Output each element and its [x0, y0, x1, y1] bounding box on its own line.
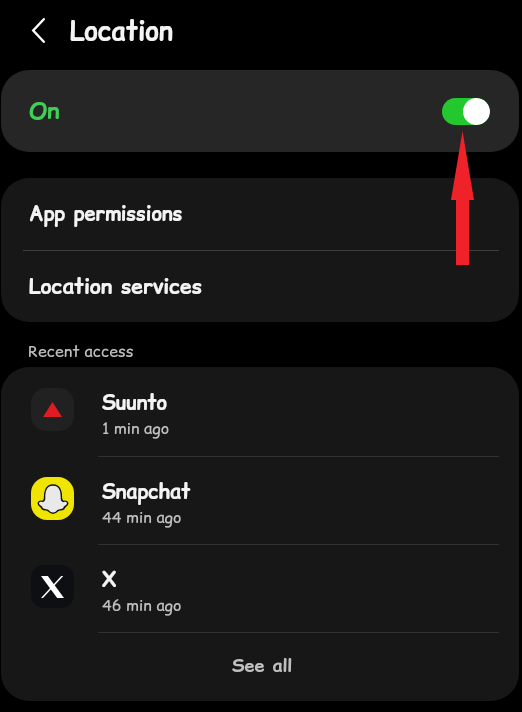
staticText: Location services — [29, 272, 202, 301]
staticText: App permissions — [29, 200, 183, 228]
button[interactable]: Snapchat — [1, 456, 519, 545]
staticText: X — [102, 566, 117, 594]
staticText: Suunto — [102, 389, 168, 417]
button[interactable]: X — [1, 544, 519, 633]
button[interactable]: Back — [20, 12, 56, 48]
staticText: On — [29, 95, 60, 127]
staticText: Snapchat — [102, 478, 191, 506]
staticText: Location — [70, 13, 173, 49]
staticText: Recent access — [28, 340, 134, 362]
button[interactable]: On — [1, 70, 519, 152]
button[interactable]: App permissions — [1, 178, 519, 250]
button[interactable]: Suunto — [1, 367, 519, 456]
staticText: 44 min ago — [102, 506, 182, 528]
staticText: 46 min ago — [102, 594, 182, 616]
button[interactable]: Location services — [1, 251, 519, 322]
staticText: See all — [232, 653, 293, 678]
button[interactable]: Location on toggle — [442, 98, 490, 125]
button[interactable]: See all — [1, 633, 519, 701]
staticText: 1 min ago — [102, 417, 170, 439]
